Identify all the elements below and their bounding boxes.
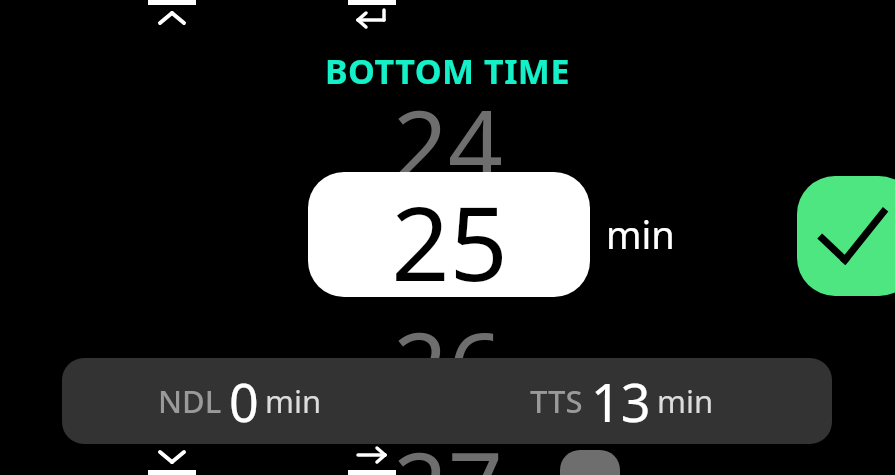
staticText: 27 bbox=[393, 420, 503, 475]
staticText: TTS bbox=[530, 380, 583, 422]
staticText: 26 bbox=[393, 300, 503, 410]
staticText: BOTTOM TIME bbox=[325, 48, 570, 94]
button[interactable]: Next bbox=[348, 447, 396, 475]
button[interactable]: Increase bbox=[148, 0, 196, 28]
staticText: NDL bbox=[158, 380, 222, 422]
staticText: min bbox=[265, 380, 322, 422]
button[interactable]: NDL bbox=[62, 358, 832, 444]
button[interactable]: Back bbox=[348, 0, 396, 30]
staticText: 13 bbox=[591, 366, 651, 437]
button[interactable]: 25 bbox=[308, 172, 590, 297]
staticText: 0 bbox=[229, 366, 259, 437]
staticText: min bbox=[606, 208, 675, 260]
staticText: 25 bbox=[391, 172, 508, 297]
button[interactable]: Confirm bbox=[797, 176, 895, 296]
staticText: min bbox=[657, 380, 714, 422]
button[interactable]: Decrease bbox=[148, 447, 196, 475]
staticText: 24 bbox=[393, 78, 503, 188]
